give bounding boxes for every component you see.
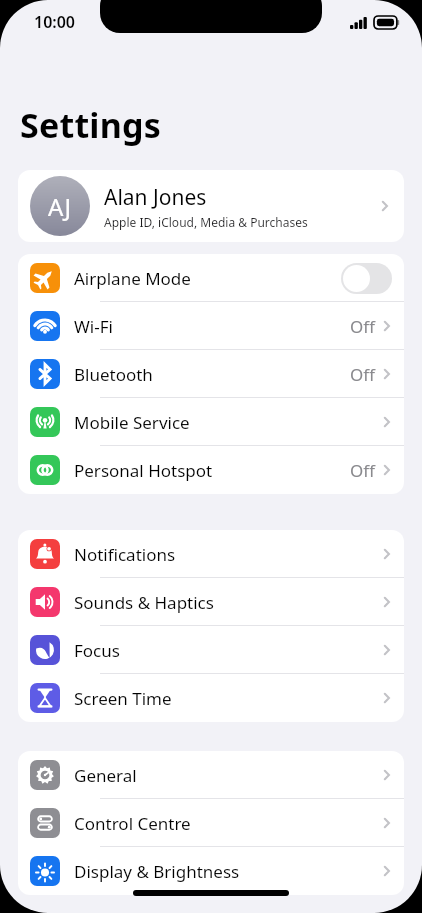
staticText: Screen Time xyxy=(74,687,382,710)
staticText: AJ xyxy=(48,190,72,223)
button[interactable]: Bluetooth xyxy=(18,350,404,398)
button[interactable]: Screen Time xyxy=(18,674,404,722)
staticText: Airplane Mode xyxy=(74,267,341,290)
staticText: Wi-Fi xyxy=(74,315,350,338)
staticText: Personal Hotspot xyxy=(74,459,350,482)
button[interactable]: Mobile Service xyxy=(18,398,404,446)
button[interactable]: Focus xyxy=(18,626,404,674)
button[interactable]: Airplane Mode toggle xyxy=(341,263,392,294)
staticText: Settings xyxy=(20,102,161,148)
button[interactable]: Airplane Mode xyxy=(18,254,404,302)
button[interactable]: Personal Hotspot xyxy=(18,446,404,494)
staticText: Off xyxy=(350,315,375,338)
staticText: Off xyxy=(350,363,375,386)
staticText: Focus xyxy=(74,639,382,662)
button[interactable]: Wi-Fi xyxy=(18,302,404,350)
staticText: Mobile Service xyxy=(74,411,382,434)
button[interactable]: Sounds & Haptics xyxy=(18,578,404,626)
staticText: Display & Brightness xyxy=(74,860,382,883)
staticText: Bluetooth xyxy=(74,363,350,386)
button[interactable]: Control Centre xyxy=(18,799,404,847)
staticText: Notifications xyxy=(74,543,382,566)
staticText: General xyxy=(74,764,382,787)
button[interactable]: AJ xyxy=(18,170,404,242)
staticText: 10:00 xyxy=(34,11,76,33)
button[interactable]: Display & Brightness xyxy=(18,847,404,895)
staticText: Alan Jones xyxy=(104,183,207,212)
staticText: Control Centre xyxy=(74,812,382,835)
button[interactable]: General xyxy=(18,751,404,799)
staticText: Sounds & Haptics xyxy=(74,591,382,614)
staticText: Off xyxy=(350,459,375,482)
staticText: Apple ID, iCloud, Media & Purchases xyxy=(104,214,308,230)
button[interactable]: Notifications xyxy=(18,530,404,578)
